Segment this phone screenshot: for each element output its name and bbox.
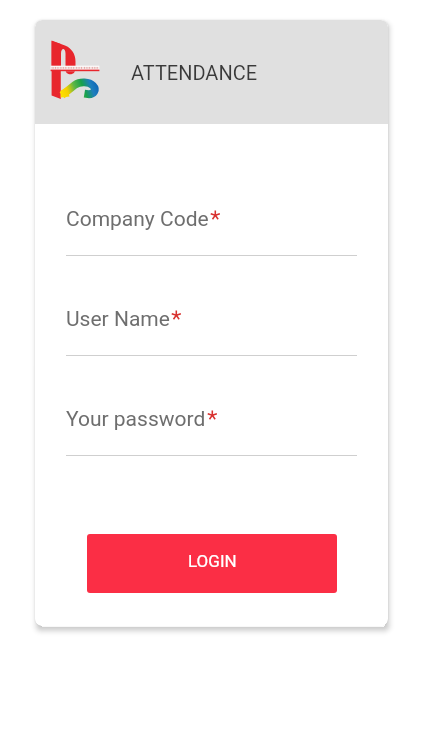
button[interactable]: LOGIN [87, 534, 337, 593]
staticText: ATTENDANCE [131, 61, 258, 84]
staticText: LOGIN [188, 551, 237, 571]
staticText: Your password [66, 407, 206, 432]
button[interactable]: Your password [66, 407, 357, 456]
staticText: User Name [66, 307, 170, 332]
staticText: Company Code [66, 207, 209, 232]
button[interactable]: Company Code [66, 207, 357, 256]
button[interactable]: User Name [66, 307, 357, 356]
